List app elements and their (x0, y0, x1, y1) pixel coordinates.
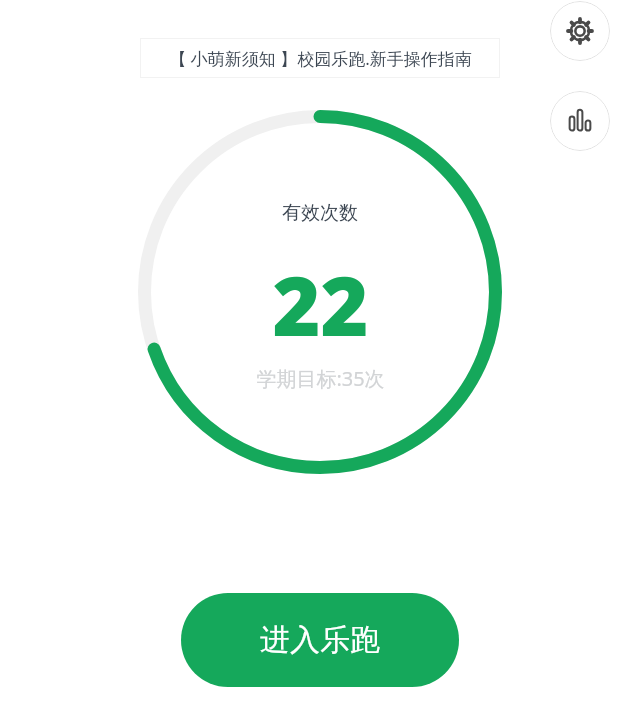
button[interactable]: 【 小萌新须知 】校园乐跑.新手操作指南 (140, 38, 500, 78)
staticText: 【 小萌新须知 】校园乐跑.新手操作指南 (169, 47, 472, 70)
staticText: 进入乐跑 (260, 621, 380, 659)
button[interactable]: 进入乐跑 (181, 593, 459, 687)
staticText: 22 (272, 248, 369, 340)
staticText: 学期目标:35次 (256, 365, 385, 392)
button[interactable]: Statistics (550, 91, 610, 151)
button[interactable]: Settings (550, 1, 610, 61)
staticText: 有效次数 (282, 201, 358, 225)
